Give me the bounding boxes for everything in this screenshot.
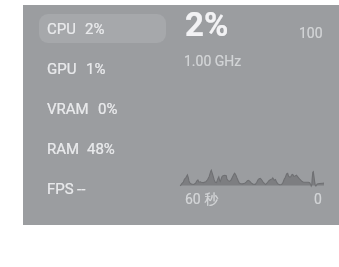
staticText: 2%: [85, 20, 105, 38]
button[interactable]: CPU: [39, 14, 166, 43]
staticText: 0: [314, 191, 322, 207]
staticText: 48%: [87, 140, 115, 158]
staticText: VRAM: [47, 100, 89, 118]
staticText: GPU: [47, 60, 77, 78]
staticText: 1%: [86, 60, 106, 78]
staticText: 1.00 GHz: [184, 53, 242, 69]
button[interactable]: GPU: [39, 54, 166, 83]
staticText: --: [77, 180, 86, 198]
staticText: RAM: [47, 140, 80, 158]
staticText: 60 秒: [185, 191, 219, 209]
other: CPU usage history chart: [23, 5, 339, 225]
button[interactable]: VRAM: [39, 94, 166, 123]
staticText: 2%: [185, 5, 229, 44]
staticText: 0%: [98, 100, 118, 118]
button[interactable]: FPS: [39, 174, 166, 203]
staticText: CPU: [47, 20, 76, 38]
staticText: FPS: [47, 180, 74, 198]
staticText: 100: [299, 25, 323, 41]
button[interactable]: RAM: [39, 134, 166, 163]
